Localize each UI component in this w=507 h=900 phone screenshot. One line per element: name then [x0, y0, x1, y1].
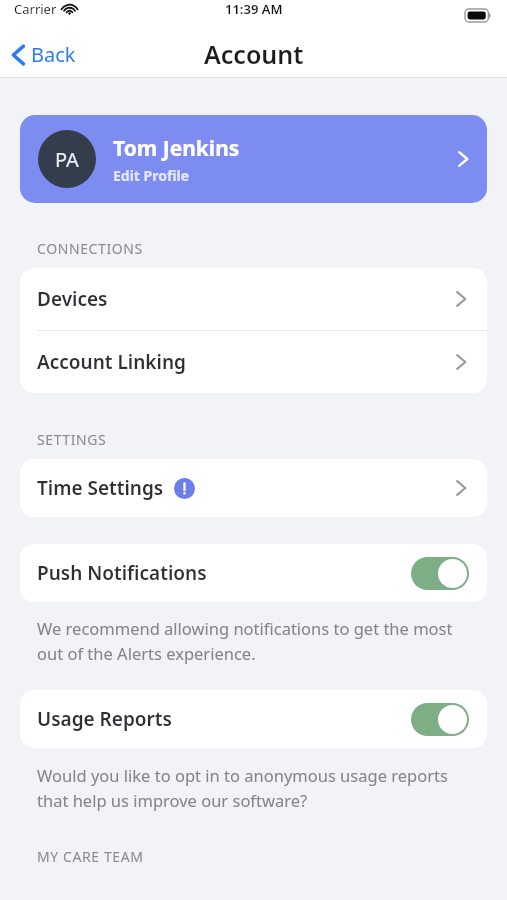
staticText: We recommend allowing notifications to g…: [37, 617, 467, 664]
staticText: Devices: [37, 286, 108, 312]
other: Usage Reports toggle, on: [411, 703, 469, 736]
staticText: Carrier: [14, 0, 57, 18]
staticText: Account: [204, 37, 304, 71]
button[interactable]: Time Settings: [20, 459, 487, 517]
staticText: Back: [31, 41, 76, 68]
other: Push Notifications toggle, on: [411, 557, 469, 590]
staticText: SETTINGS: [37, 430, 107, 449]
staticText: MY CARE TEAM: [37, 847, 144, 866]
staticText: Time Settings: [37, 475, 164, 501]
staticText: PA: [55, 146, 79, 173]
staticText: Usage Reports: [37, 706, 172, 732]
button[interactable]: Account Linking: [20, 331, 487, 393]
staticText: Account Linking: [37, 349, 186, 375]
staticText: Tom Jenkins: [113, 134, 240, 163]
button[interactable]: Back: [0, 35, 88, 74]
button[interactable]: Devices: [20, 268, 487, 330]
staticText: Push Notifications: [37, 560, 207, 586]
staticText: 11:39 AM: [225, 0, 283, 18]
staticText: Would you like to opt in to anonymous us…: [37, 764, 467, 811]
button[interactable]: PA: [20, 115, 487, 203]
staticText: CONNECTIONS: [37, 239, 143, 258]
button[interactable]: Push Notifications: [20, 544, 487, 602]
staticText: Edit Profile: [113, 166, 190, 185]
button[interactable]: Usage Reports: [20, 690, 487, 748]
